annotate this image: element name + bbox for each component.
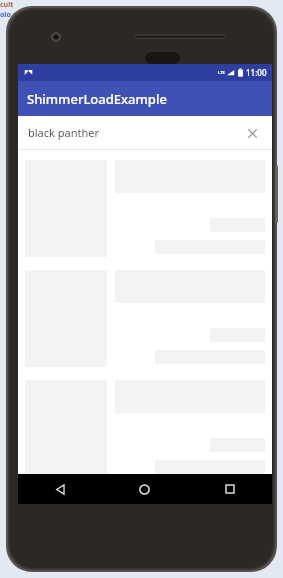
staticText: 11:00 <box>246 67 267 78</box>
button[interactable] <box>18 155 272 265</box>
button[interactable]: Clear search <box>242 123 262 143</box>
button[interactable] <box>18 375 272 474</box>
button[interactable]: black panther <box>18 116 272 149</box>
staticText: ShimmerLoadExample <box>27 90 167 108</box>
button[interactable]: Recent apps <box>187 474 272 504</box>
staticText: olo <box>0 10 11 20</box>
button[interactable]: Home <box>102 474 187 504</box>
button[interactable]: Back <box>18 474 102 504</box>
staticText: LTE <box>218 70 225 75</box>
other: Power button <box>275 165 278 223</box>
button[interactable] <box>18 265 272 375</box>
staticText: black panther <box>28 125 242 140</box>
staticText: cult <box>0 0 14 10</box>
